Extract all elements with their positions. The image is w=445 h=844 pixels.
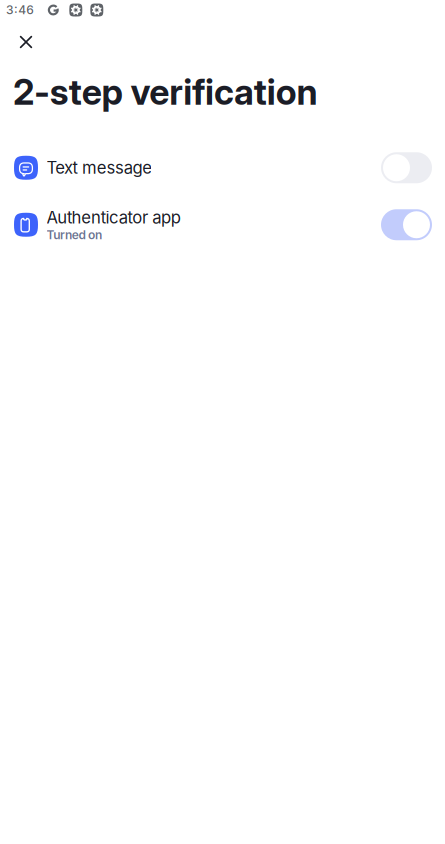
staticText: 3:46 (6, 3, 34, 17)
button[interactable]: Close (0, 20, 52, 64)
button[interactable]: Text message (0, 139, 445, 196)
staticText: Text message (46, 158, 152, 178)
staticText: 2-step verification (13, 70, 318, 113)
button[interactable]: Authenticator app (0, 196, 445, 253)
staticText: Authenticator app (46, 207, 181, 228)
staticText: Turned on (46, 228, 102, 242)
